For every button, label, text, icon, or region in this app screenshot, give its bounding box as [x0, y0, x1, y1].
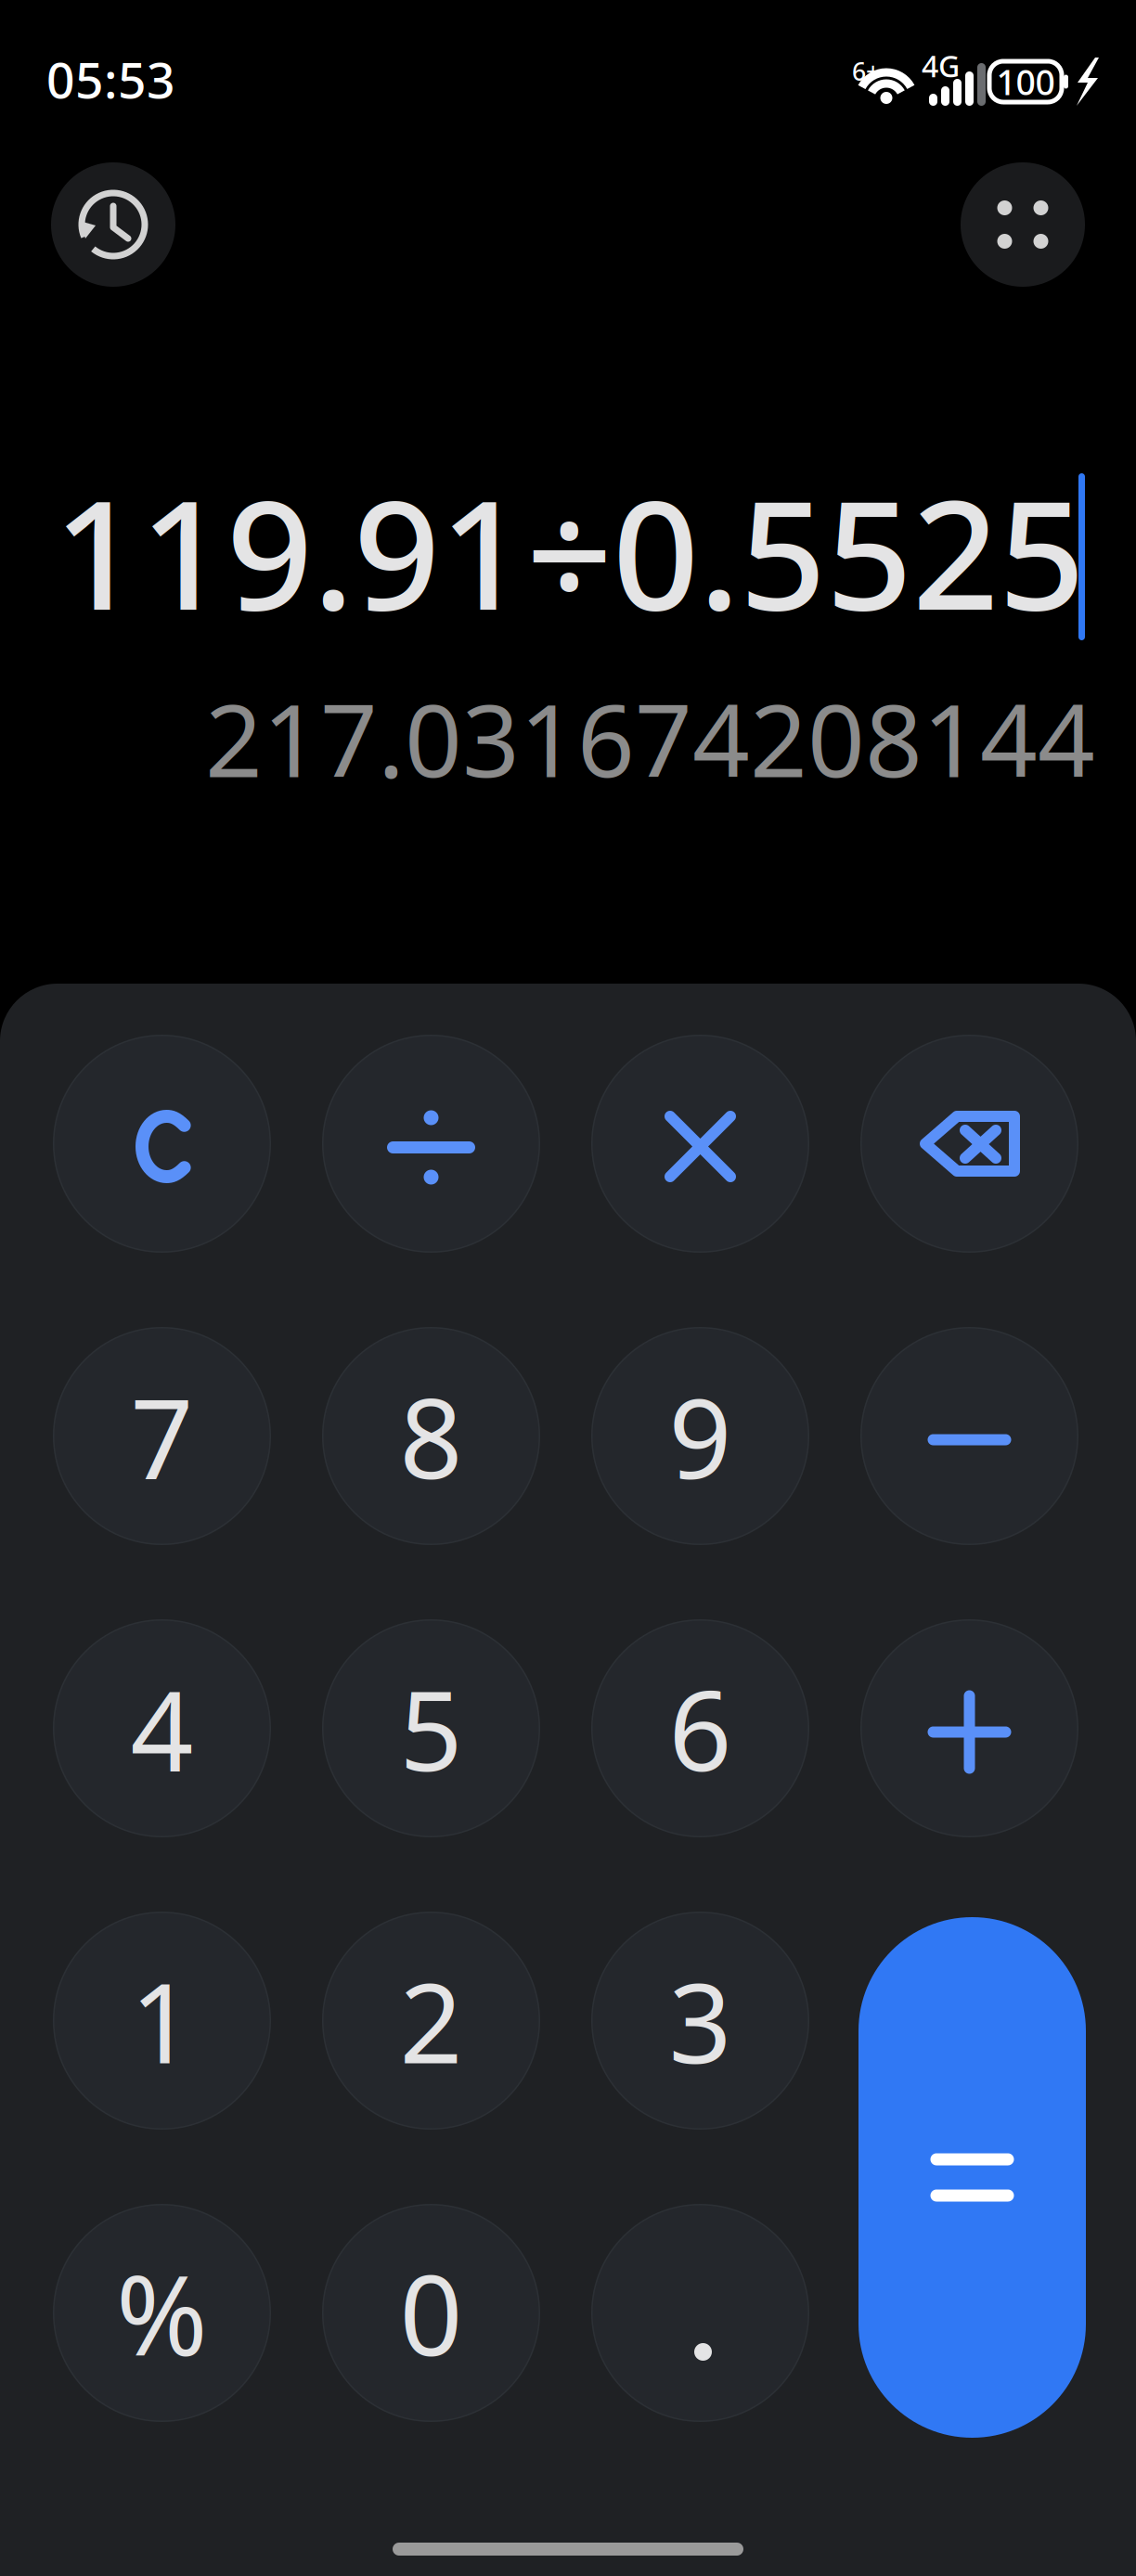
button[interactable]: Backspace	[860, 1035, 1078, 1253]
button[interactable]: 7	[53, 1327, 271, 1545]
button[interactable]: 0	[322, 2204, 540, 2422]
staticText: 6	[669, 1655, 732, 1801]
button[interactable]: 8	[322, 1327, 540, 1545]
staticText: %	[116, 2240, 208, 2386]
button[interactable]: Percent	[53, 2204, 271, 2422]
staticText: 9	[669, 1363, 732, 1509]
button[interactable]: Minus	[860, 1327, 1078, 1545]
staticText: 119.91÷0.5525	[54, 451, 1085, 651]
button[interactable]: History	[51, 162, 175, 287]
button[interactable]: More options	[961, 162, 1085, 287]
staticText: 217.031674208144	[205, 672, 1095, 805]
button[interactable]: Decimal point	[591, 2204, 809, 2422]
staticText: 8	[400, 1363, 463, 1509]
staticText: 4	[130, 1655, 194, 1801]
button[interactable]: 9	[591, 1327, 809, 1545]
staticText: 100	[996, 59, 1055, 105]
staticText: 1	[130, 1947, 194, 2094]
staticText: 6+	[852, 55, 880, 88]
button[interactable]: Plus	[860, 1619, 1078, 1837]
button[interactable]: Clear	[53, 1035, 271, 1253]
button[interactable]: 3	[591, 1912, 809, 2130]
button[interactable]: 2	[322, 1912, 540, 2130]
staticText: 4G	[922, 46, 960, 85]
staticText: 0	[400, 2240, 463, 2386]
button[interactable]: Equals	[858, 1917, 1086, 2438]
staticText: 5	[400, 1655, 463, 1801]
button[interactable]: Divide	[322, 1035, 540, 1253]
staticText: 7	[130, 1363, 194, 1509]
button[interactable]: 1	[53, 1912, 271, 2130]
button[interactable]: 6	[591, 1619, 809, 1837]
staticText: 2	[400, 1947, 463, 2094]
button[interactable]: 4	[53, 1619, 271, 1837]
button[interactable]: Multiply	[591, 1035, 809, 1253]
button[interactable]: 5	[322, 1619, 540, 1837]
staticText: 05:53	[46, 46, 175, 112]
staticText: 3	[669, 1947, 732, 2094]
